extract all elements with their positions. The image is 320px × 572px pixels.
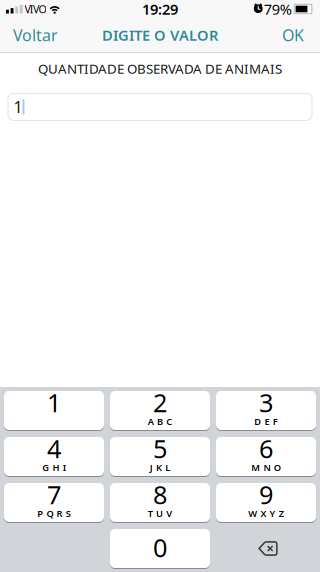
staticText: 79%: [264, 0, 292, 19]
staticText: Voltar: [13, 24, 58, 46]
staticText: 1: [13, 96, 22, 117]
staticText: OK: [282, 24, 304, 46]
staticText: 6: [259, 432, 273, 465]
staticText: 19:29: [142, 0, 178, 19]
staticText: F: [273, 415, 278, 428]
staticText: X: [260, 507, 266, 520]
staticText: D: [254, 415, 261, 428]
staticText: E: [264, 415, 269, 428]
button[interactable]: 6: [216, 437, 316, 476]
staticText: Q: [46, 507, 53, 520]
staticText: 2: [153, 386, 167, 419]
staticText: A: [148, 415, 154, 428]
staticText: QUANTIDADE OBSERVADA DE ANIMAIS: [38, 60, 282, 77]
staticText: U: [156, 507, 163, 520]
staticText: N: [263, 461, 270, 474]
staticText: T: [148, 507, 153, 520]
staticText: I: [63, 461, 66, 474]
button[interactable]: 8: [110, 483, 210, 522]
staticText: R: [57, 507, 63, 520]
staticText: DIGITE O VALOR: [102, 25, 218, 45]
button[interactable]: Voltar: [0, 24, 58, 46]
staticText: J: [150, 461, 153, 474]
button[interactable]: 4: [4, 437, 104, 476]
staticText: 5: [153, 432, 167, 465]
button[interactable]: 5: [110, 437, 210, 476]
button[interactable]: 3: [216, 391, 316, 430]
staticText: V: [166, 507, 172, 520]
staticText: 8: [153, 478, 167, 511]
button[interactable]: Quantidade observada de animais: [8, 93, 312, 120]
button[interactable]: 7: [4, 483, 104, 522]
staticText: W: [248, 507, 257, 520]
staticText: P: [37, 507, 43, 520]
staticText: 4: [47, 432, 61, 465]
staticText: Y: [270, 507, 276, 520]
button[interactable]: 2: [110, 391, 210, 430]
button[interactable]: 9: [216, 483, 316, 522]
staticText: B: [157, 415, 163, 428]
button[interactable]: 0: [110, 529, 210, 568]
staticText: Z: [279, 507, 284, 520]
staticText: O: [274, 461, 281, 474]
button[interactable]: 1: [4, 391, 104, 430]
staticText: G: [42, 461, 49, 474]
staticText: 0: [153, 531, 167, 564]
staticText: VIVO: [24, 2, 46, 16]
staticText: 7: [47, 478, 61, 511]
staticText: H: [52, 461, 59, 474]
staticText: M: [251, 461, 260, 474]
button[interactable]: Delete: [216, 529, 316, 568]
button[interactable]: OK: [282, 24, 320, 46]
staticText: K: [156, 461, 162, 474]
staticText: 1: [47, 386, 61, 419]
staticText: 9: [259, 478, 273, 511]
staticText: 3: [259, 386, 273, 419]
staticText: C: [166, 415, 172, 428]
staticText: S: [66, 507, 71, 520]
staticText: L: [165, 461, 170, 474]
